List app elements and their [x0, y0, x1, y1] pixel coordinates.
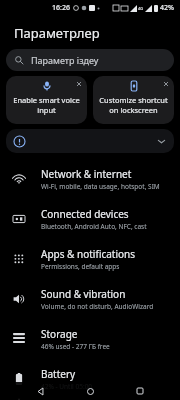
button[interactable]: Storage [0, 319, 180, 359]
button[interactable]: Dismiss [93, 76, 174, 124]
staticText: Battery [41, 367, 76, 381]
staticText: 46% used - 277 ГБ free [41, 342, 110, 351]
staticText: Apps & notifications [41, 247, 136, 261]
button[interactable]: Battery [0, 359, 180, 399]
button[interactable]: Network & internet [0, 159, 180, 199]
staticText: Enable smart voice input [13, 95, 80, 115]
button[interactable]: Dismiss [74, 79, 84, 89]
staticText: Параметрлер [14, 24, 100, 42]
staticText: Connected devices [41, 207, 129, 221]
button[interactable]: Dismiss [6, 76, 87, 124]
button[interactable]: Sound & vibration [0, 279, 180, 319]
button[interactable]: Home [80, 382, 100, 400]
staticText: Permissions, default apps [41, 262, 120, 271]
staticText: Bluetooth, Android Auto, NFC, cast [41, 222, 147, 231]
staticText: 4G [138, 6, 144, 11]
staticText: 42% [160, 3, 174, 13]
staticText: 42% - Until 05:00 [41, 382, 93, 391]
button[interactable]: Параметр іздеу [6, 49, 174, 71]
button[interactable]: Connected devices [0, 199, 180, 239]
button[interactable]: Dismiss [161, 79, 171, 89]
staticText: Wi-Fi, mobile, data usage, hotspot, SIM [41, 182, 160, 191]
staticText: Sound & vibration [41, 287, 126, 301]
button[interactable] [6, 129, 174, 153]
staticText: 16:26 [52, 3, 70, 13]
staticText: Параметр іздеу [31, 54, 99, 66]
button[interactable]: Recents [130, 382, 150, 400]
button[interactable]: Back [30, 382, 50, 400]
staticText: Customize shortcut on lockscreen [99, 95, 168, 115]
staticText: Storage [41, 327, 78, 341]
staticText: Volume, do not disturb, AudioWizard [41, 302, 154, 311]
button[interactable]: Apps & notifications [0, 239, 180, 279]
staticText: Network & internet [41, 167, 132, 181]
